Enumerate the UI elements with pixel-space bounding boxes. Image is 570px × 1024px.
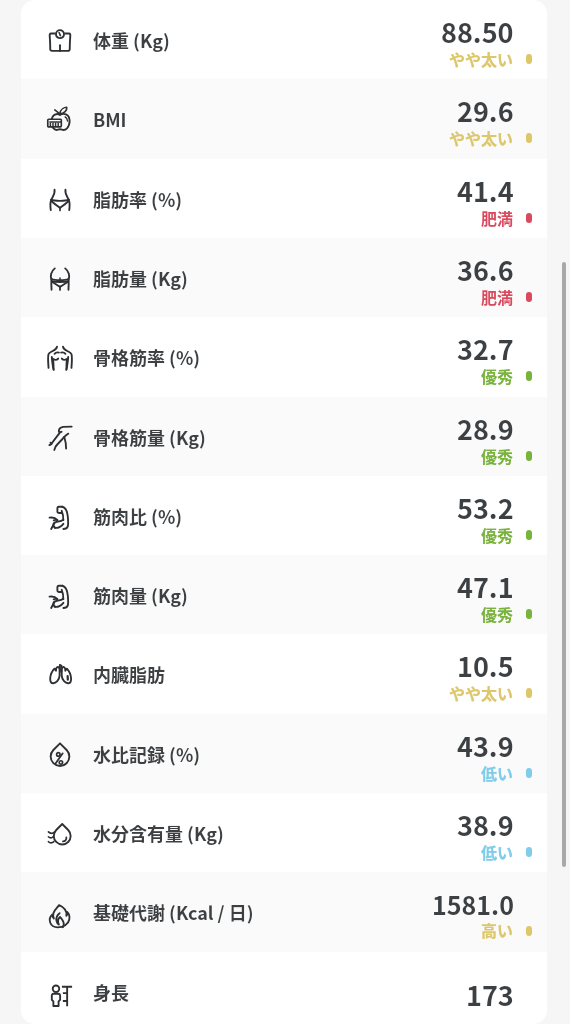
staticText: 低い [481, 761, 514, 784]
staticText: 筋肉量 (Kg) [93, 582, 188, 608]
button[interactable]: 脂肪量 (Kg) [21, 238, 547, 317]
button[interactable]: 水分含有量 (Kg) [21, 793, 547, 872]
other: 骨格筋量 (Kg) [37, 397, 83, 476]
staticText: 28.9 [457, 409, 514, 448]
staticText: 29.6 [457, 91, 514, 130]
staticText: 高い [481, 918, 514, 941]
other: 脂肪量 (Kg) [37, 238, 83, 317]
staticText: 脂肪率 (%) [93, 186, 183, 212]
staticText: 体重 (Kg) [93, 27, 170, 53]
button[interactable]: 内臓脂肪 [21, 634, 547, 714]
staticText: 優秀 [481, 523, 514, 546]
button[interactable]: 基礎代謝 (Kcal / 日) [21, 872, 547, 952]
staticText: 10.5 [457, 646, 514, 685]
button[interactable]: 脂肪率 (%) [21, 159, 547, 238]
staticText: 1581.0 [432, 886, 514, 922]
staticText: やや太い [449, 47, 514, 70]
staticText: 優秀 [481, 444, 514, 467]
staticText: 肥満 [481, 285, 514, 308]
button[interactable]: 水比記録 (%) [21, 714, 547, 793]
staticText: 38.9 [457, 805, 514, 844]
staticText: 88.50 [441, 12, 514, 51]
staticText: 36.6 [457, 250, 514, 289]
staticText: やや太い [449, 681, 514, 704]
other: 筋肉比 (%) [37, 476, 83, 555]
staticText: 筋肉比 (%) [93, 503, 183, 529]
button[interactable]: 骨格筋量 (Kg) [21, 397, 547, 476]
button[interactable]: 骨格筋率 (%) [21, 317, 547, 397]
other: 筋肉量 (Kg) [37, 555, 83, 634]
other: 水比記録 (%) [37, 714, 83, 793]
staticText: 身長 [93, 979, 129, 1005]
staticText: 脂肪量 (Kg) [93, 265, 188, 291]
other: BMI [37, 79, 83, 159]
button[interactable]: 体重 (Kg) [21, 0, 547, 79]
staticText: 43.9 [457, 726, 514, 765]
other: 水分含有量 (Kg) [37, 793, 83, 872]
staticText: 水比記録 (%) [93, 741, 201, 767]
other: 基礎代謝 (Kcal / 日) [37, 872, 83, 952]
staticText: 47.1 [457, 567, 514, 606]
staticText: 内臓脂肪 [93, 661, 165, 687]
other: 脂肪率 (%) [37, 159, 83, 238]
staticText: 優秀 [481, 364, 514, 387]
staticText: BMI [93, 106, 127, 132]
staticText: 32.7 [457, 329, 514, 368]
staticText: 肥満 [481, 206, 514, 229]
staticText: 173 [466, 975, 514, 1014]
button[interactable]: 筋肉量 (Kg) [21, 555, 547, 634]
staticText: 基礎代謝 (Kcal / 日) [93, 899, 254, 925]
staticText: 骨格筋率 (%) [93, 344, 201, 370]
other: 身長 [37, 952, 83, 1024]
button[interactable]: 筋肉比 (%) [21, 476, 547, 555]
other: 内臓脂肪 [37, 634, 83, 714]
staticText: やや太い [449, 126, 514, 149]
button[interactable]: 身長 [21, 952, 547, 1024]
staticText: 53.2 [457, 488, 514, 527]
staticText: 水分含有量 (Kg) [93, 820, 224, 846]
other: 骨格筋率 (%) [37, 317, 83, 397]
staticText: 低い [481, 840, 514, 863]
staticText: 41.4 [457, 171, 514, 210]
staticText: 優秀 [481, 602, 514, 625]
staticText: 骨格筋量 (Kg) [93, 424, 206, 450]
other: 体重 (Kg) [37, 0, 83, 79]
button[interactable]: BMI [21, 79, 547, 159]
